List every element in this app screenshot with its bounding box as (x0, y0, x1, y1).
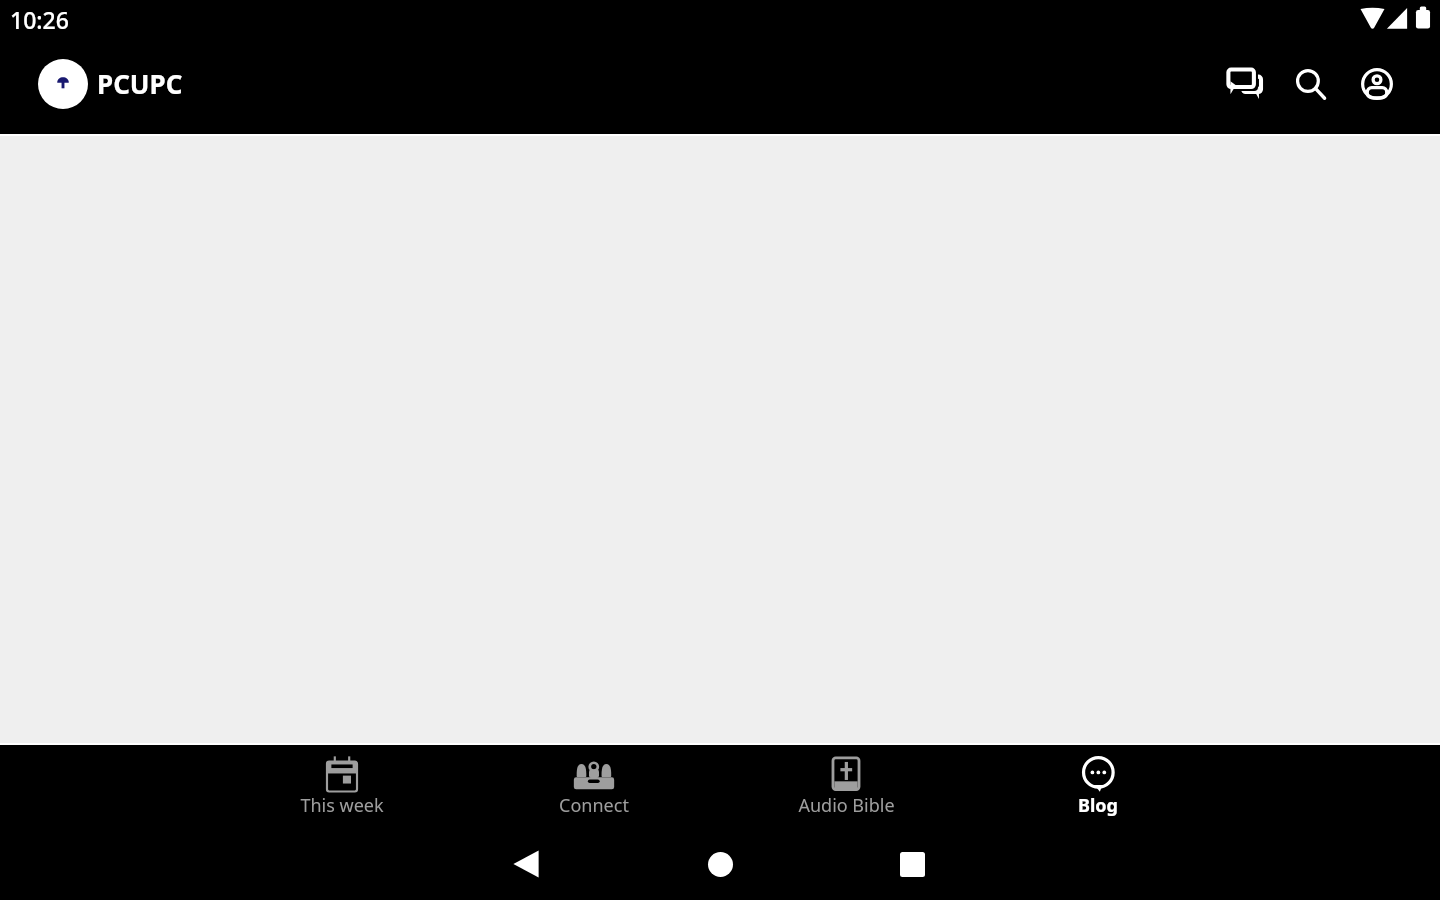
staticText: This week (300, 793, 384, 818)
button[interactable]: Search (1285, 58, 1337, 110)
button[interactable]: Back (500, 838, 552, 890)
button[interactable]: Messages (1218, 58, 1270, 110)
staticText: Audio Bible (798, 793, 895, 818)
staticText: Blog (1078, 793, 1118, 818)
button[interactable]: Home (694, 838, 746, 890)
staticText: PCUPC (97, 66, 183, 101)
button[interactable]: Audio Bible (720, 745, 972, 830)
button[interactable]: Recents (886, 838, 938, 890)
button[interactable]: Account (1351, 58, 1403, 110)
staticText: 10:26 (10, 4, 69, 35)
button[interactable]: PCUPC logo (38, 59, 88, 109)
button[interactable]: This week (216, 745, 468, 830)
button[interactable]: Connect (468, 745, 720, 830)
staticText: Connect (559, 793, 629, 818)
button[interactable]: Blog (972, 745, 1224, 830)
